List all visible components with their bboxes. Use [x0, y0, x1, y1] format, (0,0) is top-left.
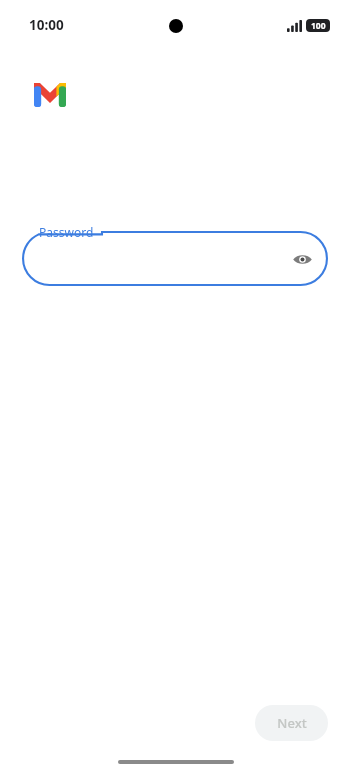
staticText: 10:00 [29, 16, 64, 34]
staticText: Password [39, 224, 94, 240]
button[interactable]: Next [255, 705, 328, 741]
staticText: 100 [311, 20, 326, 32]
other: Gmail [34, 83, 66, 107]
button[interactable]: Password [22, 231, 328, 286]
button[interactable]: Show password [284, 241, 320, 277]
staticText: Next [277, 714, 307, 732]
